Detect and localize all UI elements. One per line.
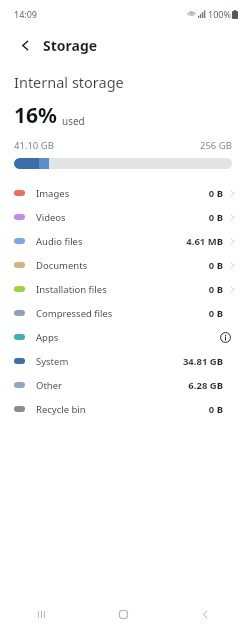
button[interactable]: Back: [164, 598, 246, 630]
staticText: 0 B: [208, 403, 223, 416]
staticText: 100%: [208, 8, 231, 20]
staticText: 0 B: [208, 259, 223, 272]
staticText: Videos: [36, 211, 66, 224]
staticText: Recycle bin: [36, 403, 86, 416]
staticText: 34.81 GB: [182, 355, 223, 368]
staticText: Storage: [43, 36, 98, 55]
button[interactable]: System: [0, 349, 246, 373]
staticText: Apps: [36, 331, 59, 344]
staticText: Internal storage: [14, 72, 124, 92]
staticText: 0 B: [208, 187, 223, 200]
button[interactable]: Back: [13, 33, 37, 57]
button[interactable]: Other: [0, 373, 246, 397]
button[interactable]: Apps: [0, 325, 246, 349]
button[interactable]: Videos: [0, 205, 246, 229]
button[interactable]: Installation files: [0, 277, 246, 301]
staticText: 41.10 GB: [14, 139, 54, 152]
staticText: 256 GB: [200, 139, 232, 152]
staticText: 0 B: [208, 211, 223, 224]
staticText: Images: [36, 187, 70, 200]
button[interactable]: Audio files: [0, 229, 246, 253]
button[interactable]: Apps info: [218, 328, 233, 346]
staticText: 4.61 MB: [186, 235, 223, 248]
staticText: System: [36, 355, 69, 368]
button[interactable]: Compressed files: [0, 301, 246, 325]
staticText: Audio files: [36, 235, 83, 248]
staticText: 14:09: [14, 8, 38, 20]
staticText: Installation files: [36, 283, 107, 296]
button[interactable]: Documents: [0, 253, 246, 277]
staticText: 6.28 GB: [188, 379, 223, 392]
button[interactable]: Home: [82, 598, 164, 630]
button[interactable]: Images: [0, 181, 246, 205]
staticText: Compressed files: [36, 307, 113, 320]
staticText: Documents: [36, 259, 88, 272]
staticText: 16%: [14, 101, 57, 130]
button[interactable]: Recent apps: [0, 598, 82, 630]
button[interactable]: Recycle bin: [0, 397, 246, 421]
staticText: 0 B: [208, 307, 223, 320]
staticText: 0 B: [208, 283, 223, 296]
staticText: used: [62, 114, 85, 128]
staticText: Other: [36, 379, 63, 392]
